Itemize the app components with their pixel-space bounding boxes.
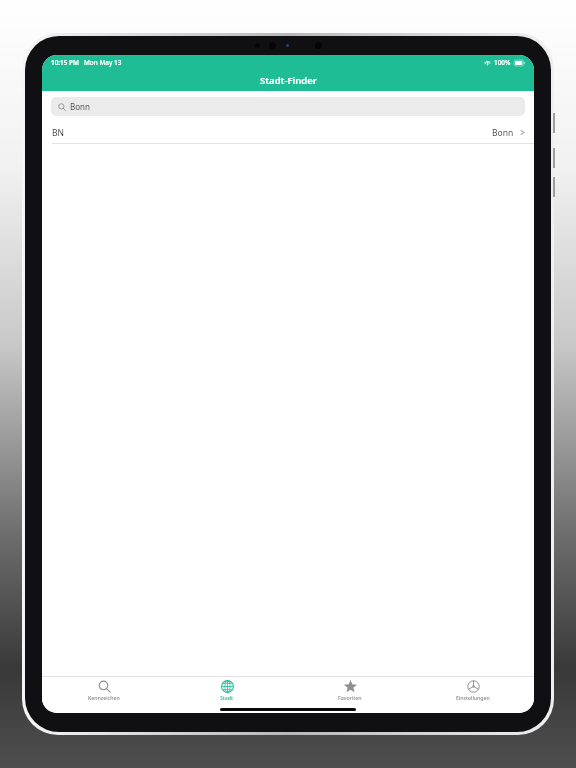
button[interactable]: Einstellungen xyxy=(411,679,534,713)
other: Stadt xyxy=(221,680,234,693)
staticText: BN xyxy=(52,127,64,139)
staticText: Stadt-Finder xyxy=(260,74,317,87)
staticText: 10:15 PM xyxy=(51,58,79,67)
staticText: Stadt xyxy=(220,694,234,701)
staticText: Kennzeichen xyxy=(88,694,120,701)
staticText: Favoriten xyxy=(338,694,362,701)
button[interactable]: Search xyxy=(51,97,525,116)
button[interactable]: Favoriten xyxy=(288,679,411,713)
other: Favoriten xyxy=(344,680,357,693)
staticText: 100% xyxy=(494,58,511,67)
staticText: Bonn xyxy=(492,127,514,139)
other: Einstellungen xyxy=(467,680,480,693)
staticText: Einstellungen xyxy=(456,694,490,701)
staticText: Mon May 13 xyxy=(84,58,122,67)
button[interactable]: Search xyxy=(42,679,165,713)
button[interactable]: BN xyxy=(42,122,534,144)
staticText: Bonn xyxy=(70,101,90,112)
other: Search xyxy=(58,103,66,111)
other: Search xyxy=(98,680,111,693)
button[interactable]: Stadt xyxy=(165,679,288,713)
